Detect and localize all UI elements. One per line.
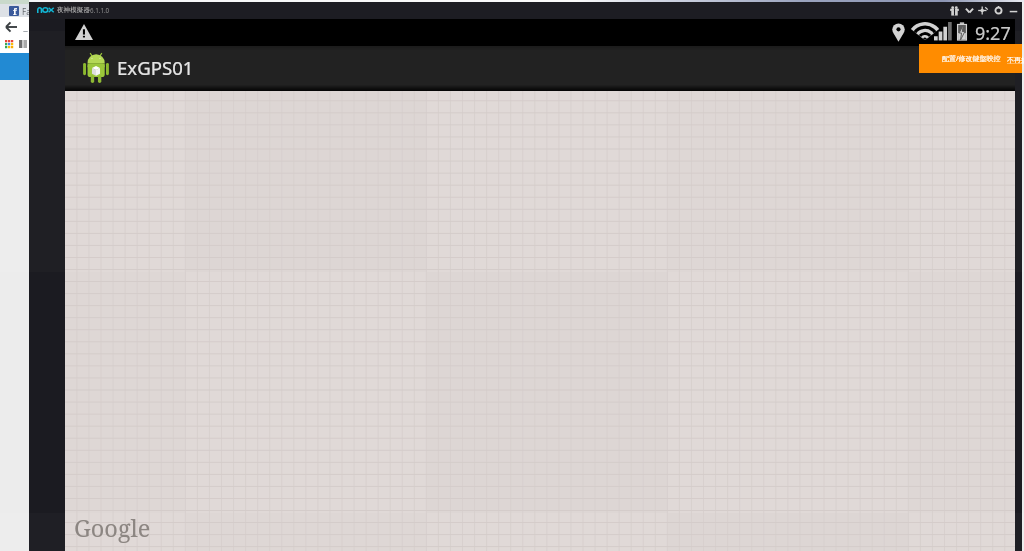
staticText: Google	[74, 512, 151, 544]
other: Warning	[75, 24, 93, 40]
staticText: 配置/修改鍵盤映控	[942, 54, 1001, 64]
button[interactable]: Pin window	[978, 5, 988, 16]
staticText: f	[13, 5, 17, 15]
button[interactable]: Gift	[950, 5, 959, 16]
staticText: Fa	[22, 6, 31, 17]
button[interactable]: Back	[4, 20, 18, 34]
button[interactable]: Minimize	[1009, 6, 1018, 15]
staticText: 夜神模擬器	[57, 6, 90, 14]
button[interactable]: Expand	[965, 6, 974, 15]
button[interactable]: Settings	[994, 6, 1003, 15]
button[interactable]: 配置/修改鍵盤映控	[919, 44, 1022, 73]
staticText: ExGPS01	[117, 55, 194, 80]
staticText: –	[23, 23, 28, 37]
staticText: 9:27	[975, 21, 1011, 46]
staticText: 不再提示	[1007, 55, 1024, 64]
staticText: 6.1.1.0	[90, 6, 110, 14]
